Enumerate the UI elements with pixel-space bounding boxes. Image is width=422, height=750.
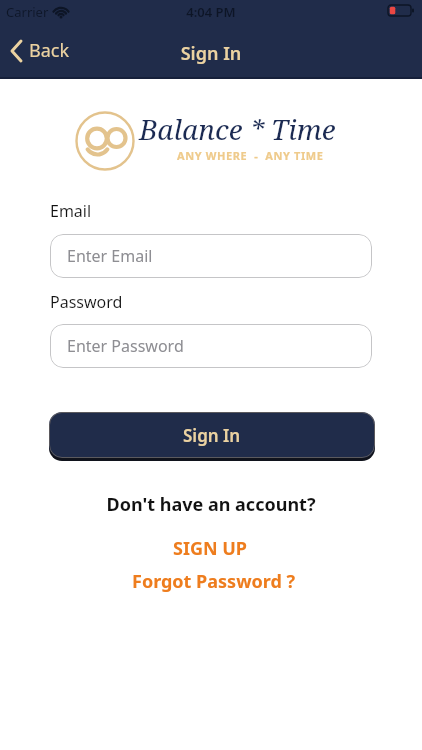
staticText: Enter Email xyxy=(67,245,153,267)
staticText: Carrier xyxy=(6,3,49,21)
button[interactable]: Back xyxy=(10,38,70,63)
button[interactable]: Enter Password xyxy=(50,324,372,368)
staticText: Forgot Password ? xyxy=(132,569,296,594)
staticText: SIGN UP xyxy=(173,536,248,561)
staticText: Enter Password xyxy=(67,335,184,357)
staticText: Email xyxy=(50,200,92,222)
button[interactable]: Enter Email xyxy=(50,234,372,278)
button[interactable]: Forgot Password ? xyxy=(122,559,306,604)
staticText: Don't have an account? xyxy=(0,492,422,517)
staticText: Balance * Time xyxy=(139,110,336,148)
staticText: ANY WHERE - ANY TIME xyxy=(177,148,324,163)
button[interactable]: Sign In xyxy=(49,412,375,458)
staticText: Back xyxy=(29,38,70,63)
staticText: 4:04 PM xyxy=(0,3,422,21)
staticText: Sign In xyxy=(183,424,241,447)
button[interactable]: SIGN UP xyxy=(161,524,260,573)
staticText: Sign In xyxy=(0,41,422,66)
staticText: Password xyxy=(50,291,123,313)
